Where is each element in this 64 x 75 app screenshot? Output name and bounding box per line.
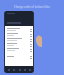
other: Drag handle bbox=[29, 48, 32, 52]
other: Drag handle bbox=[29, 33, 32, 37]
button[interactable]: Drag handle bbox=[5, 47, 33, 52]
button[interactable]: Drag handle bbox=[5, 42, 33, 47]
button[interactable]: Tab bbox=[7, 68, 10, 71]
button[interactable]: Tab bbox=[23, 68, 26, 71]
button[interactable]: Drag handle bbox=[5, 27, 33, 32]
button[interactable]: Drag handle bbox=[5, 32, 33, 37]
button[interactable]: Tab bbox=[12, 68, 15, 71]
other: Drag handle bbox=[29, 55, 32, 59]
button[interactable]: Tab bbox=[28, 68, 31, 71]
button[interactable]: Tab bbox=[18, 68, 21, 71]
other: Drag handle bbox=[29, 38, 32, 42]
button[interactable]: Drag handle bbox=[5, 37, 33, 42]
button[interactable]: Drag handle bbox=[5, 54, 33, 59]
other: Drag handle bbox=[29, 28, 32, 32]
other: Drag handle bbox=[29, 43, 32, 47]
staticText: Change order of bottom Tabs bbox=[14, 5, 50, 9]
